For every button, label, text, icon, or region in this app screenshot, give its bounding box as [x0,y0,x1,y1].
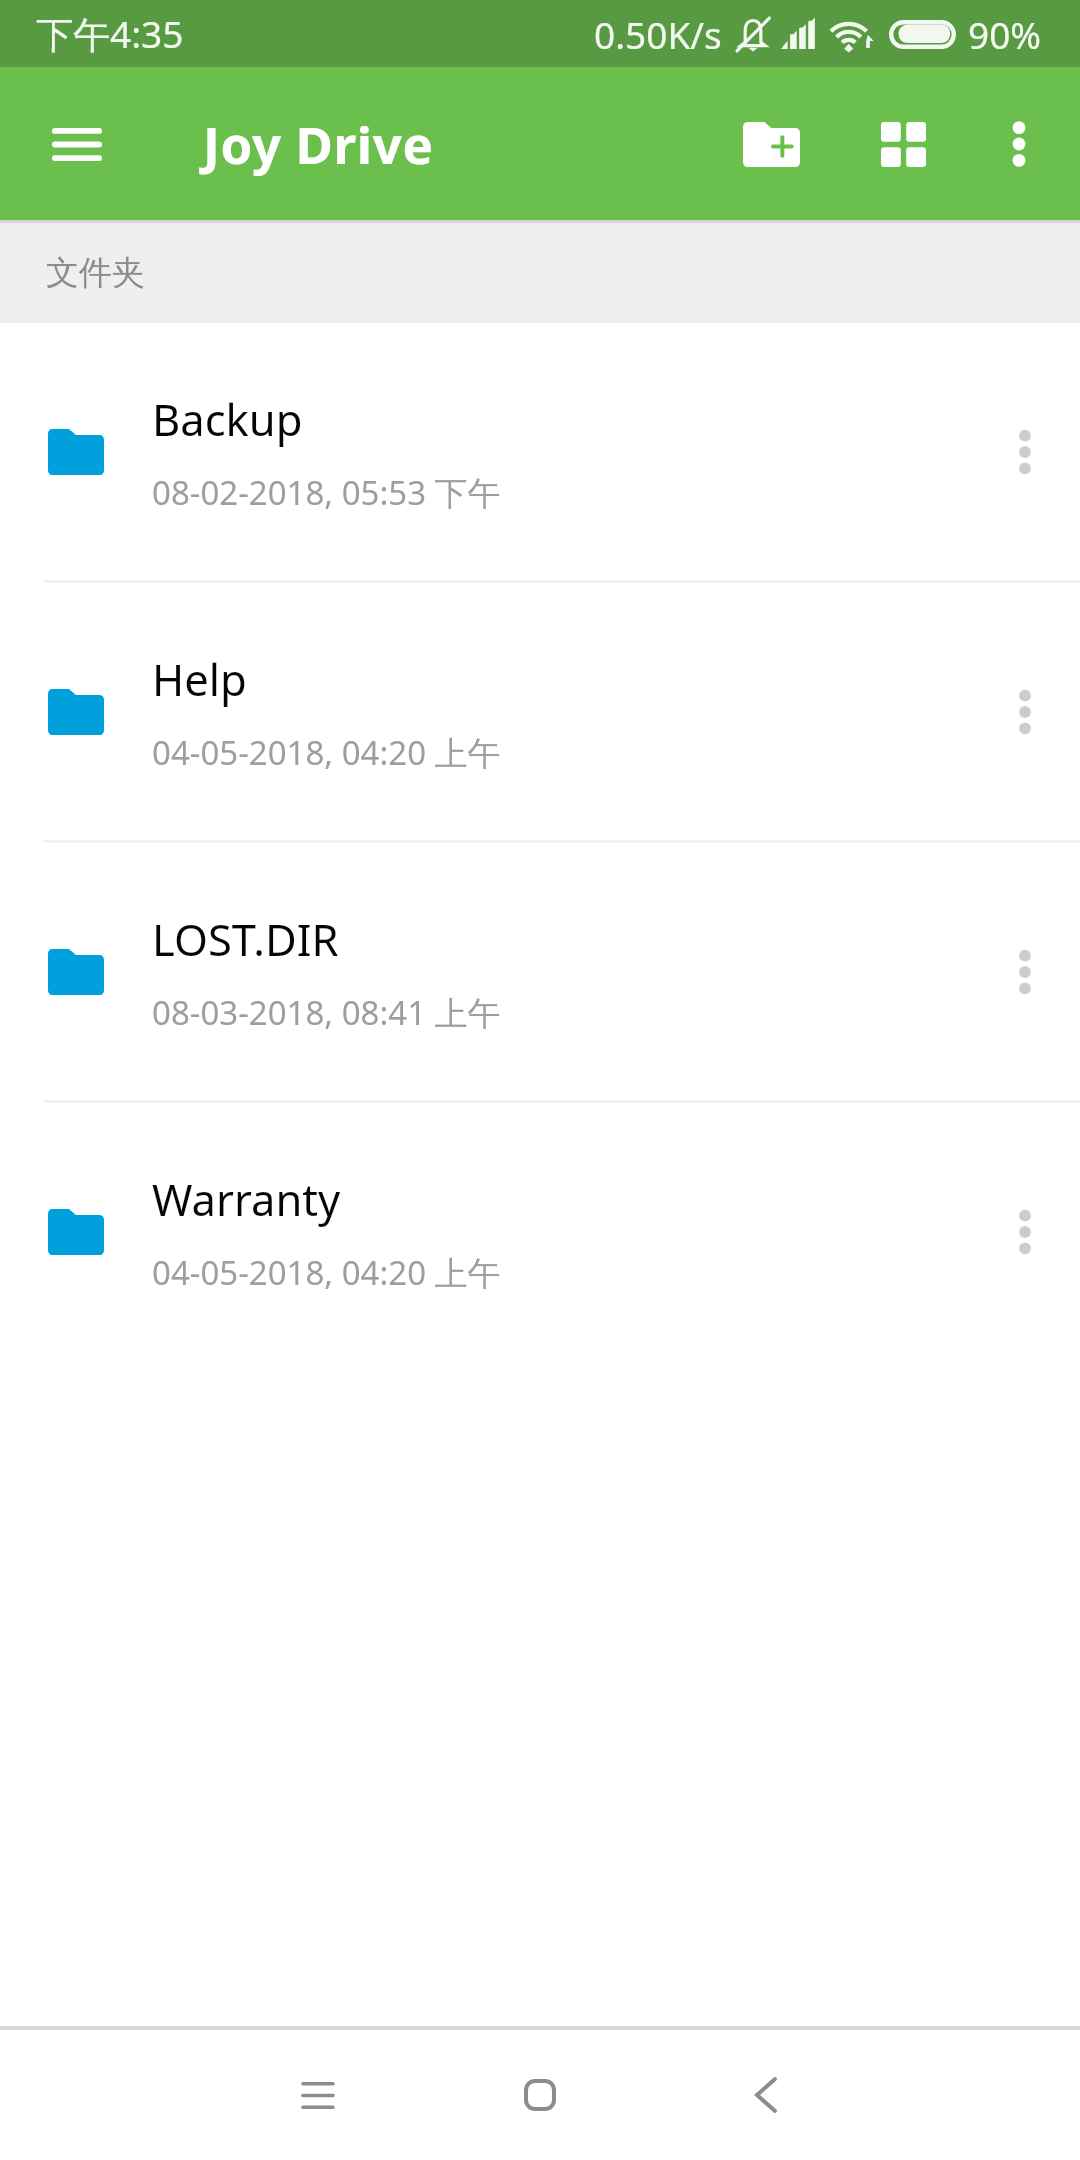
button[interactable]: Open navigation drawer [22,89,132,199]
button[interactable]: Backup [0,323,1080,583]
button[interactable]: New folder [716,89,826,199]
staticText: Help [152,649,247,708]
staticText: LOST.DIR [152,909,339,968]
staticText: 90% [968,9,1042,59]
button[interactable]: More options for Backup [970,397,1080,507]
button[interactable]: Back [706,2035,826,2155]
button[interactable]: More options for Warranty [970,1177,1080,1287]
button[interactable]: LOST.DIR [0,843,1080,1103]
button[interactable]: More options for LOST.DIR [970,917,1080,1027]
staticText: 04-05-2018, 04:20 上午 [152,1250,501,1295]
button[interactable]: Home [480,2035,600,2155]
button[interactable]: More options for Help [970,657,1080,767]
staticText: 08-02-2018, 05:53 下午 [152,470,501,515]
button[interactable]: Warranty [0,1103,1080,1363]
button[interactable]: Menu [258,2035,378,2155]
staticText: Backup [152,389,303,448]
staticText: Warranty [152,1169,341,1228]
staticText: 文件夹 [46,252,145,294]
staticText: 0.50K/s [594,9,722,59]
button[interactable]: More options [964,89,1074,199]
staticText: Joy Drive [203,109,434,178]
staticText: 04-05-2018, 04:20 上午 [152,730,501,775]
button[interactable]: Grid view [848,89,958,199]
staticText: 08-03-2018, 08:41 上午 [152,990,501,1035]
staticText: 下午4:35 [36,8,184,59]
button[interactable]: Help [0,583,1080,843]
